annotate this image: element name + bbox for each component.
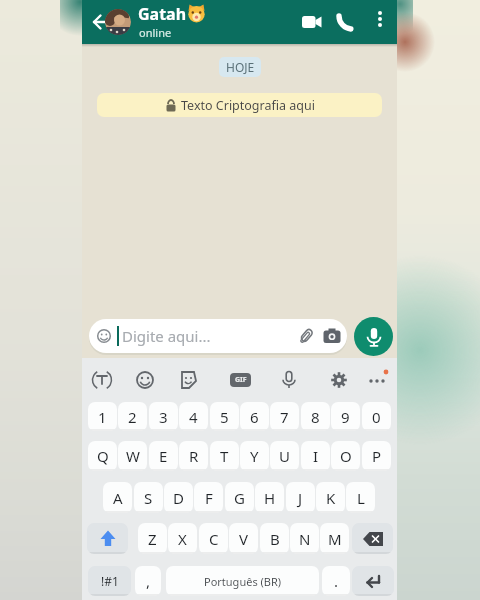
staticText: GIF bbox=[235, 375, 247, 385]
button[interactable]: 2 bbox=[118, 402, 147, 431]
button[interactable]: I bbox=[301, 441, 330, 471]
staticText: E bbox=[159, 446, 168, 466]
staticText: 4 bbox=[189, 407, 198, 427]
staticText: W bbox=[126, 446, 140, 466]
button[interactable]: 7 bbox=[270, 402, 299, 431]
button[interactable]: L bbox=[346, 482, 375, 513]
button[interactable]: U bbox=[270, 441, 299, 471]
button[interactable]: Texto Criptografia aqui bbox=[97, 93, 382, 117]
staticText: Português (BR) bbox=[204, 574, 282, 589]
button[interactable]: 3 bbox=[149, 402, 178, 431]
button[interactable]: D bbox=[164, 482, 193, 513]
staticText: 1 bbox=[98, 407, 107, 427]
button[interactable]: Digite aqui... bbox=[89, 319, 347, 353]
staticText: C bbox=[209, 529, 219, 549]
button[interactable] bbox=[354, 317, 393, 356]
button[interactable] bbox=[364, 366, 390, 392]
staticText: J bbox=[298, 488, 303, 508]
button[interactable] bbox=[105, 9, 131, 35]
staticText: P bbox=[372, 446, 382, 466]
staticText: T bbox=[220, 446, 229, 466]
button[interactable] bbox=[275, 366, 303, 394]
staticText: 5 bbox=[220, 407, 229, 427]
button[interactable] bbox=[131, 366, 159, 394]
staticText: !#1 bbox=[101, 573, 119, 589]
button[interactable] bbox=[87, 523, 128, 554]
button[interactable]: Q bbox=[88, 441, 117, 471]
staticText: 3 bbox=[159, 407, 168, 427]
button[interactable]: A bbox=[103, 482, 132, 513]
button[interactable]: G bbox=[225, 482, 254, 513]
staticText: Y bbox=[250, 446, 259, 466]
button[interactable]: X bbox=[168, 523, 197, 554]
button[interactable] bbox=[332, 8, 360, 36]
button[interactable] bbox=[86, 8, 114, 36]
staticText: 8 bbox=[311, 407, 320, 427]
button[interactable]: 1 bbox=[88, 402, 117, 431]
staticText: Z bbox=[148, 529, 157, 549]
staticText: Texto Criptografia aqui bbox=[181, 97, 315, 114]
staticText: D bbox=[173, 488, 184, 508]
staticText: O bbox=[340, 446, 352, 466]
staticText: 6 bbox=[250, 407, 259, 427]
staticText: N bbox=[299, 529, 311, 549]
button[interactable]: H bbox=[255, 482, 284, 513]
staticText: R bbox=[189, 446, 199, 466]
button[interactable]: N bbox=[290, 523, 319, 554]
staticText: B bbox=[270, 529, 280, 549]
button[interactable]: 8 bbox=[301, 402, 330, 431]
button[interactable] bbox=[325, 366, 353, 394]
button[interactable]: E bbox=[149, 441, 178, 471]
button[interactable]: 4 bbox=[179, 402, 208, 431]
staticText: F bbox=[205, 488, 213, 508]
button[interactable]: M bbox=[320, 523, 349, 554]
button[interactable]: 0 bbox=[362, 402, 391, 431]
button[interactable]: 6 bbox=[240, 402, 269, 431]
staticText: M bbox=[328, 529, 342, 549]
button[interactable]: . bbox=[322, 566, 350, 596]
button[interactable] bbox=[174, 366, 202, 394]
button[interactable]: 9 bbox=[331, 402, 360, 431]
staticText: 2 bbox=[128, 407, 137, 427]
button[interactable] bbox=[352, 523, 393, 554]
button[interactable]: O bbox=[331, 441, 360, 471]
staticText: K bbox=[326, 488, 336, 508]
button[interactable]: R bbox=[179, 441, 208, 471]
staticText: V bbox=[239, 529, 249, 549]
staticText: L bbox=[357, 488, 365, 508]
button[interactable]: 5 bbox=[210, 402, 239, 431]
button[interactable]: !#1 bbox=[88, 566, 131, 596]
button[interactable]: Y bbox=[240, 441, 269, 471]
button[interactable]: F bbox=[194, 482, 223, 513]
button[interactable] bbox=[352, 566, 394, 596]
staticText: G bbox=[234, 488, 245, 508]
staticText: Gatah bbox=[138, 3, 187, 25]
staticText: 7 bbox=[280, 407, 289, 427]
staticText: U bbox=[279, 446, 290, 466]
button[interactable]: T bbox=[210, 441, 239, 471]
button[interactable]: W bbox=[118, 441, 147, 471]
staticText: HOJE bbox=[226, 59, 255, 75]
staticText: 9 bbox=[341, 407, 350, 427]
button[interactable]: S bbox=[134, 482, 163, 513]
staticText: , bbox=[146, 571, 151, 591]
staticText: X bbox=[178, 529, 187, 549]
button[interactable]: , bbox=[135, 566, 161, 596]
button[interactable]: GIF bbox=[230, 373, 251, 387]
button[interactable]: Português (BR) bbox=[166, 566, 319, 596]
button[interactable] bbox=[88, 366, 116, 394]
button[interactable]: P bbox=[362, 441, 391, 471]
button[interactable]: K bbox=[316, 482, 345, 513]
staticText: Q bbox=[97, 446, 109, 466]
button[interactable]: V bbox=[229, 523, 258, 554]
staticText: . bbox=[334, 571, 339, 591]
button[interactable]: Z bbox=[138, 523, 167, 554]
button[interactable]: B bbox=[260, 523, 289, 554]
button[interactable] bbox=[368, 7, 392, 31]
button[interactable]: J bbox=[286, 482, 315, 513]
staticText: S bbox=[144, 488, 153, 508]
staticText: 0 bbox=[372, 407, 381, 427]
button[interactable]: C bbox=[199, 523, 228, 554]
staticText: H bbox=[264, 488, 276, 508]
button[interactable] bbox=[298, 8, 326, 36]
